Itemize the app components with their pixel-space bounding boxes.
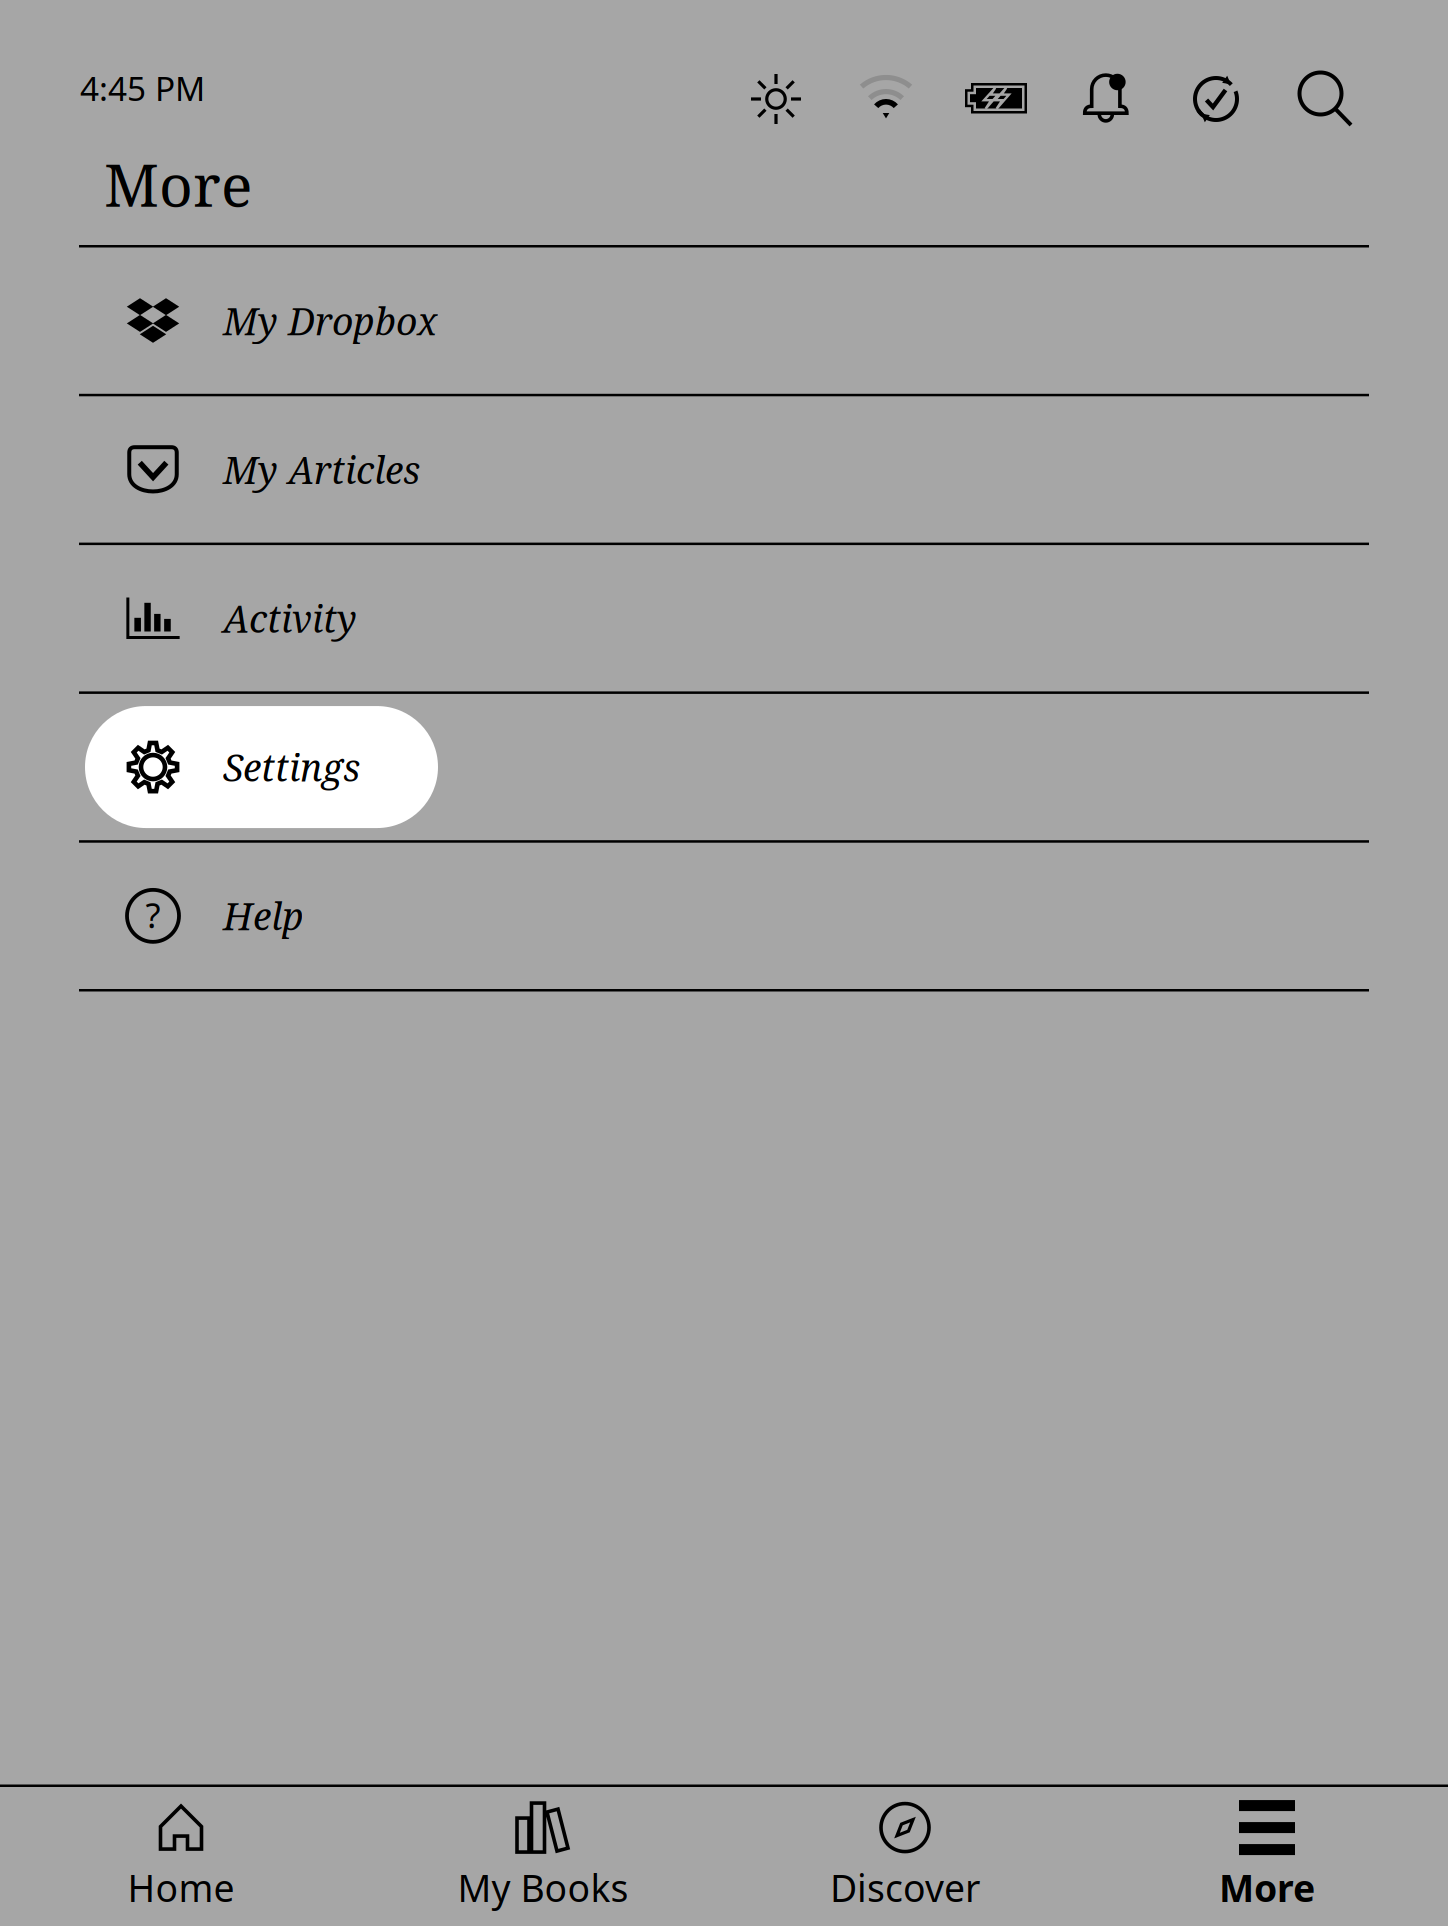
button[interactable]: Activity: [79, 545, 1369, 691]
staticText: Activity: [223, 593, 357, 644]
button[interactable]: Brightness: [750, 73, 801, 124]
button[interactable]: Discover: [724, 1787, 1086, 1926]
button[interactable]: Battery: [965, 83, 1027, 115]
button[interactable]: ?: [79, 843, 1369, 989]
staticText: ?: [145, 891, 160, 938]
button[interactable]: Wi-Fi: [857, 76, 915, 122]
staticText: Help: [223, 890, 304, 941]
staticText: My Dropbox: [223, 295, 437, 346]
button[interactable]: Notifications: [1082, 73, 1129, 125]
button[interactable]: Search: [1299, 72, 1352, 125]
staticText: 4:45 PM: [80, 65, 205, 111]
staticText: My Articles: [223, 444, 420, 495]
button[interactable]: My Articles: [79, 396, 1369, 543]
button[interactable]: Settings: [79, 694, 1369, 840]
button[interactable]: Home: [0, 1787, 362, 1926]
button[interactable]: More: [1086, 1787, 1448, 1926]
staticText: Home: [127, 1862, 234, 1913]
staticText: More: [1219, 1862, 1315, 1913]
button[interactable]: My Books: [362, 1787, 724, 1926]
staticText: More: [104, 144, 252, 224]
button[interactable]: My Dropbox: [79, 247, 1369, 394]
staticText: Settings: [223, 742, 360, 792]
staticText: My Books: [457, 1862, 628, 1913]
staticText: Discover: [830, 1862, 980, 1913]
button[interactable]: Sync: [1192, 75, 1239, 122]
